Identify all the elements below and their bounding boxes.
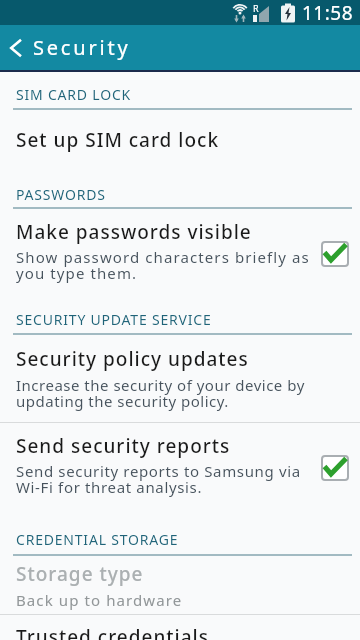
button[interactable]: Make passwords visible: [0, 209, 360, 310]
staticText: R: [253, 2, 259, 14]
staticText: Security policy updates: [16, 346, 249, 372]
staticText: Storage type: [16, 561, 144, 587]
staticText: SECURITY UPDATE SERVICE: [16, 310, 212, 329]
button[interactable]: Security policy updates: [0, 335, 360, 422]
staticText: Increase the security of your device by …: [16, 375, 305, 411]
staticText: PASSWORDS: [16, 185, 106, 204]
staticText: Set up SIM card lock: [16, 127, 220, 153]
staticText: 11:58: [302, 0, 354, 25]
staticText: Send security reports: [16, 433, 231, 459]
button[interactable]: Set up SIM card lock: [0, 110, 360, 164]
staticText: Show password characters briefly as you …: [16, 247, 310, 283]
staticText: Back up to hardware: [16, 590, 183, 610]
staticText: Security: [33, 34, 131, 61]
staticText: SIM CARD LOCK: [16, 85, 132, 104]
staticText: Send security reports to Samsung via Wi-…: [16, 461, 301, 497]
button[interactable]: Security: [0, 25, 360, 70]
staticText: CREDENTIAL STORAGE: [16, 530, 179, 549]
button[interactable]: Storage type: [0, 556, 360, 614]
staticText: Make passwords visible: [16, 219, 252, 245]
staticText: Trusted credentials: [16, 624, 209, 640]
button[interactable]: Trusted credentials: [0, 615, 360, 640]
button[interactable]: Send security reports: [0, 423, 360, 530]
